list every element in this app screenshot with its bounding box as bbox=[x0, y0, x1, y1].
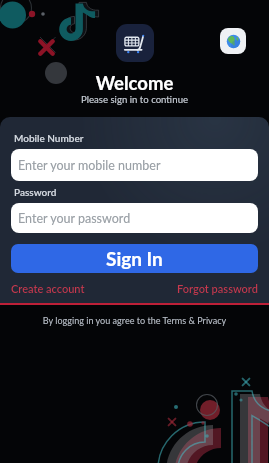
button[interactable]: Enter your password bbox=[11, 203, 258, 233]
staticText: Forgot password bbox=[177, 282, 258, 295]
button[interactable]: Create account bbox=[11, 282, 85, 295]
staticText: Enter your mobile number bbox=[18, 158, 161, 173]
staticText: Please sign in to continue bbox=[0, 94, 269, 106]
staticText: By logging in you agree to the Terms & P… bbox=[0, 315, 269, 326]
button[interactable]: Language bbox=[220, 28, 246, 54]
button[interactable]: Sign In bbox=[11, 244, 258, 273]
staticText: Enter your password bbox=[18, 211, 131, 226]
button[interactable]: Shop bbox=[116, 24, 154, 62]
staticText: Welcome bbox=[0, 72, 269, 94]
staticText: Mobile Number bbox=[14, 132, 84, 144]
button[interactable]: Forgot password bbox=[177, 282, 258, 295]
button[interactable]: Enter your mobile number bbox=[11, 149, 258, 181]
staticText: Password bbox=[14, 186, 57, 198]
staticText: Sign In bbox=[106, 247, 163, 270]
staticText: Create account bbox=[11, 282, 85, 295]
